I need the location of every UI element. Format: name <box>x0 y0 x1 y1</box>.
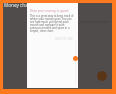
button[interactable]: GOT IT OK <box>55 36 73 41</box>
staticText: GOT IT OK <box>55 36 73 41</box>
staticText: How your money is spent <box>30 9 69 13</box>
staticText: Money chart <box>4 2 32 8</box>
button[interactable]: Add entry <box>97 71 107 81</box>
staticText: This is a great way to keep track of whe… <box>30 14 74 33</box>
button[interactable]: Scroll <box>73 56 78 61</box>
